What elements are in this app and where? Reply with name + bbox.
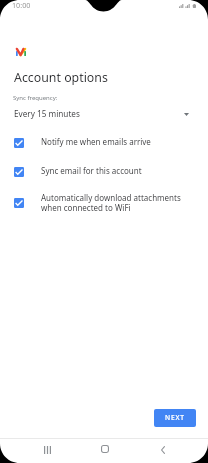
button[interactable]: Recent apps bbox=[32, 440, 62, 460]
staticText: Account options bbox=[14, 69, 108, 86]
staticText: Every 15 minutes bbox=[14, 108, 80, 119]
staticText: Sync email for this account bbox=[41, 165, 142, 176]
staticText: NEXT bbox=[165, 413, 185, 422]
button[interactable]: Back bbox=[148, 440, 178, 460]
button[interactable]: Sync email for this account bbox=[0, 161, 208, 180]
button[interactable]: NEXT bbox=[154, 409, 196, 427]
staticText: Notify me when emails arrive bbox=[41, 136, 151, 147]
button[interactable]: Automatically download attachments when … bbox=[0, 192, 208, 216]
button[interactable]: Notify me when emails arrive bbox=[0, 132, 208, 151]
button[interactable]: Home bbox=[90, 439, 120, 459]
button[interactable]: Every 15 minutes bbox=[0, 105, 208, 121]
staticText: 10:00 bbox=[12, 0, 31, 10]
staticText: Automatically download attachments when … bbox=[41, 192, 181, 213]
staticText: Sync frequency: bbox=[13, 94, 58, 102]
